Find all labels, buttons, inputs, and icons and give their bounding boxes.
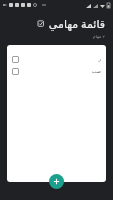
button[interactable]: تحديد المهمة	[7, 53, 106, 65]
button[interactable]: تحديد المهمة	[7, 65, 106, 77]
button[interactable]: تحديد المهمة	[12, 56, 19, 63]
staticText: ر	[98, 56, 101, 62]
staticText: صب	[91, 68, 101, 74]
button[interactable]: تحديد المهمة	[12, 68, 19, 75]
staticText: ٢ مهام	[92, 33, 105, 39]
button[interactable]: إضافة مهمة	[49, 174, 64, 189]
staticText: قائمة مهامي	[48, 16, 105, 31]
